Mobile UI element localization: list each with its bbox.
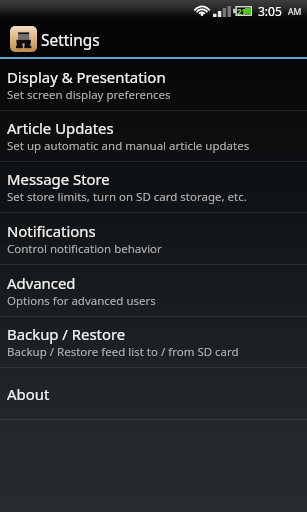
staticText: Backup / Restore [7, 324, 126, 344]
button[interactable]: Display & Presentation [0, 59, 307, 110]
staticText: Set up automatic and manual article upda… [7, 138, 250, 154]
staticText: Control notification behavior [7, 241, 162, 257]
staticText: Article Updates [7, 118, 114, 138]
button[interactable]: Notifications [0, 213, 307, 264]
staticText: Backup / Restore feed list to / from SD … [7, 344, 239, 360]
button[interactable]: Message Store [0, 162, 307, 212]
button[interactable]: Backup / Restore [0, 317, 307, 367]
staticText: Options for advanced users [7, 293, 156, 309]
staticText: Settings [41, 30, 100, 51]
staticText: 3:05 [258, 3, 282, 19]
staticText: Notifications [7, 221, 96, 241]
staticText: About [7, 384, 50, 404]
staticText: Set screen display preferences [7, 87, 171, 103]
staticText: Display & Presentation [7, 67, 166, 87]
button[interactable]: About [0, 368, 307, 419]
staticText: Set store limits, turn on SD card storag… [7, 189, 247, 205]
button[interactable]: Article Updates [0, 111, 307, 161]
staticText: Message Store [7, 169, 110, 189]
staticText: 21 [237, 6, 247, 16]
staticText: AM [288, 6, 302, 18]
button[interactable]: Up, navigate home [10, 26, 37, 52]
staticText: Advanced [7, 273, 76, 293]
button[interactable]: Advanced [0, 265, 307, 316]
